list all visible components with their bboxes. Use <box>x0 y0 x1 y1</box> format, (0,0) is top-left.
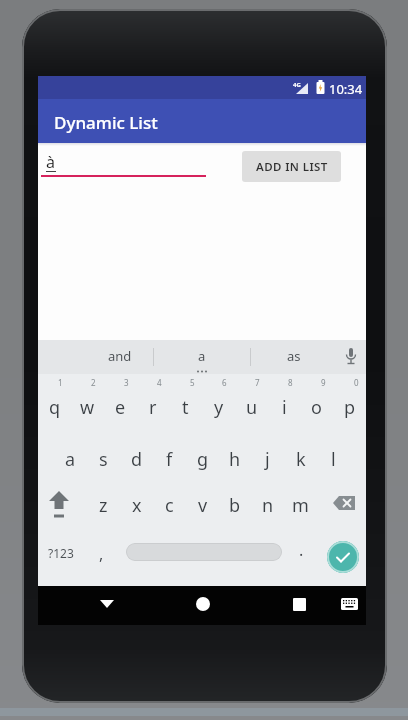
staticText: 10:34 <box>329 80 363 98</box>
button[interactable] <box>332 494 358 516</box>
button[interactable]: z <box>87 486 120 524</box>
staticText: 8 <box>288 377 293 388</box>
staticText: Dynamic List <box>54 111 158 134</box>
staticText: c <box>165 493 174 518</box>
button[interactable]: m <box>284 486 317 524</box>
staticText: q <box>49 395 61 420</box>
button[interactable]: ADD IN LIST <box>242 151 341 182</box>
staticText: x <box>132 493 142 518</box>
button[interactable]: p <box>333 388 366 426</box>
button[interactable]: x <box>120 486 153 524</box>
staticText: b <box>229 493 241 518</box>
button[interactable]: c <box>153 486 186 524</box>
button[interactable] <box>196 597 210 611</box>
button[interactable]: b <box>218 486 251 524</box>
button[interactable]: f <box>153 440 186 478</box>
button[interactable]: w <box>71 388 104 426</box>
button[interactable]: o <box>300 388 333 426</box>
staticText: 6 <box>222 377 227 388</box>
button[interactable] <box>47 491 71 521</box>
staticText: g <box>197 447 209 472</box>
button[interactable]: s <box>87 440 120 478</box>
button[interactable]: y <box>202 388 235 426</box>
button[interactable]: d <box>120 440 153 478</box>
staticText: 7 <box>255 377 260 388</box>
staticText: ADD IN LIST <box>256 159 328 175</box>
staticText: n <box>262 493 274 518</box>
staticText: 0 <box>354 377 359 388</box>
staticText: i <box>282 395 287 420</box>
button[interactable]: k <box>284 440 317 478</box>
staticText: v <box>198 493 208 518</box>
staticText: 9 <box>321 377 326 388</box>
button[interactable]: u <box>235 388 268 426</box>
staticText: 2 <box>91 377 96 388</box>
staticText: ?123 <box>48 545 74 561</box>
button[interactable]: h <box>218 440 251 478</box>
staticText: k <box>296 447 306 472</box>
staticText: r <box>149 395 157 420</box>
staticText: 1 <box>58 377 63 388</box>
staticText: 4 <box>157 377 162 388</box>
button[interactable]: j <box>251 440 284 478</box>
button[interactable]: e <box>104 388 137 426</box>
staticText: l <box>331 447 336 472</box>
button[interactable]: a <box>54 440 87 478</box>
staticText: u <box>246 395 258 420</box>
staticText: , <box>99 543 104 565</box>
staticText: z <box>99 493 108 518</box>
button[interactable]: r <box>136 388 169 426</box>
staticText: d <box>131 447 143 472</box>
staticText: t <box>182 395 189 420</box>
staticText: and <box>108 347 132 365</box>
button[interactable] <box>126 543 282 561</box>
button[interactable] <box>99 597 115 611</box>
button[interactable]: l <box>317 440 350 478</box>
button[interactable]: q <box>38 388 71 426</box>
button[interactable] <box>293 598 306 611</box>
staticText: 5 <box>190 377 195 388</box>
button[interactable]: i <box>268 388 301 426</box>
button[interactable] <box>327 541 359 573</box>
staticText: w <box>80 395 95 420</box>
staticText: f <box>166 447 173 472</box>
staticText: 3 <box>124 377 129 388</box>
staticText: a <box>198 347 206 365</box>
staticText: s <box>99 447 108 472</box>
staticText: y <box>214 395 224 420</box>
button[interactable]: n <box>251 486 284 524</box>
staticText: e <box>115 395 126 420</box>
staticText: as <box>287 347 301 365</box>
staticText: o <box>311 395 322 420</box>
staticText: j <box>265 447 270 472</box>
staticText: p <box>344 395 356 420</box>
staticText: 4G <box>293 81 301 89</box>
button[interactable] <box>341 598 358 611</box>
staticText: m <box>292 493 309 518</box>
button[interactable]: g <box>186 440 219 478</box>
button[interactable]: v <box>186 486 219 524</box>
button[interactable]: t <box>169 388 202 426</box>
staticText: h <box>229 447 241 472</box>
staticText: a <box>65 447 76 472</box>
staticText: . <box>299 539 304 561</box>
staticText: à <box>46 151 55 173</box>
